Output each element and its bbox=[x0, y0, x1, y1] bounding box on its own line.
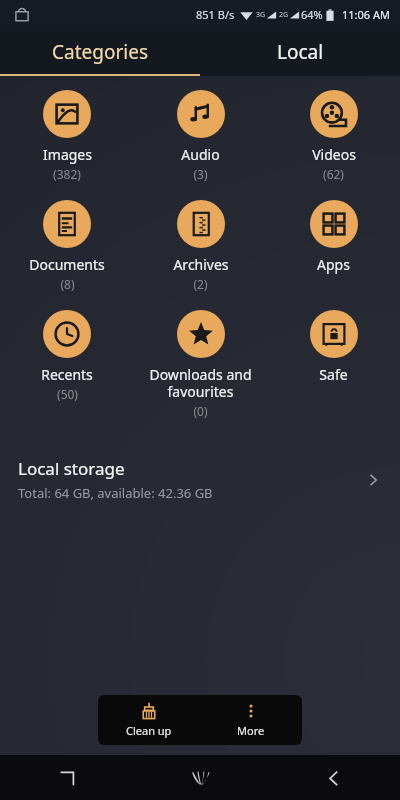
button[interactable]: Downloads and favourites bbox=[134, 308, 267, 421]
staticText: (2) bbox=[193, 276, 208, 292]
staticText: Clean up bbox=[126, 723, 172, 738]
staticText: 851 B/s bbox=[196, 7, 235, 22]
staticText: 2G bbox=[279, 10, 289, 20]
button[interactable]: Categories bbox=[0, 28, 200, 76]
staticText: Apps bbox=[317, 255, 350, 274]
staticText: Downloads and favourites bbox=[149, 365, 252, 401]
button[interactable]: Back bbox=[267, 755, 400, 800]
staticText: (62) bbox=[323, 166, 344, 182]
button[interactable]: Local storage bbox=[0, 451, 400, 508]
staticText: (382) bbox=[53, 166, 81, 182]
staticText: (3) bbox=[193, 166, 208, 182]
staticText: 3G bbox=[256, 10, 266, 20]
staticText: Images bbox=[43, 145, 92, 164]
staticText: Total: 64 GB, available: 42.36 GB bbox=[18, 484, 213, 502]
button[interactable]: Clean up bbox=[98, 695, 200, 745]
staticText: Categories bbox=[52, 39, 148, 65]
button[interactable]: Local bbox=[200, 28, 400, 76]
button[interactable]: Apps bbox=[267, 198, 400, 276]
staticText: Videos bbox=[312, 145, 356, 164]
staticText: 64% bbox=[301, 7, 323, 22]
button[interactable]: Videos bbox=[267, 88, 400, 184]
button[interactable]: More bbox=[200, 695, 302, 745]
button[interactable]: Images bbox=[0, 88, 134, 184]
staticText: More bbox=[237, 723, 265, 738]
button[interactable]: Home bbox=[134, 755, 267, 800]
staticText: (8) bbox=[60, 276, 75, 292]
staticText: Documents bbox=[29, 255, 105, 274]
button[interactable]: Recents bbox=[0, 308, 134, 404]
button[interactable]: Audio bbox=[134, 88, 267, 184]
button[interactable]: Safe bbox=[267, 308, 400, 386]
staticText: Audio bbox=[181, 145, 220, 164]
button[interactable]: Documents bbox=[0, 198, 134, 294]
staticText: (50) bbox=[57, 386, 78, 402]
staticText: Local storage bbox=[18, 457, 125, 480]
button[interactable]: Recents bbox=[0, 755, 134, 800]
staticText: (0) bbox=[193, 403, 208, 419]
staticText: Recents bbox=[41, 365, 93, 384]
staticText: Safe bbox=[319, 365, 348, 384]
staticText: Local bbox=[277, 39, 324, 65]
button[interactable]: Archives bbox=[134, 198, 267, 294]
staticText: 11:06 AM bbox=[342, 7, 390, 22]
staticText: Archives bbox=[173, 255, 229, 274]
